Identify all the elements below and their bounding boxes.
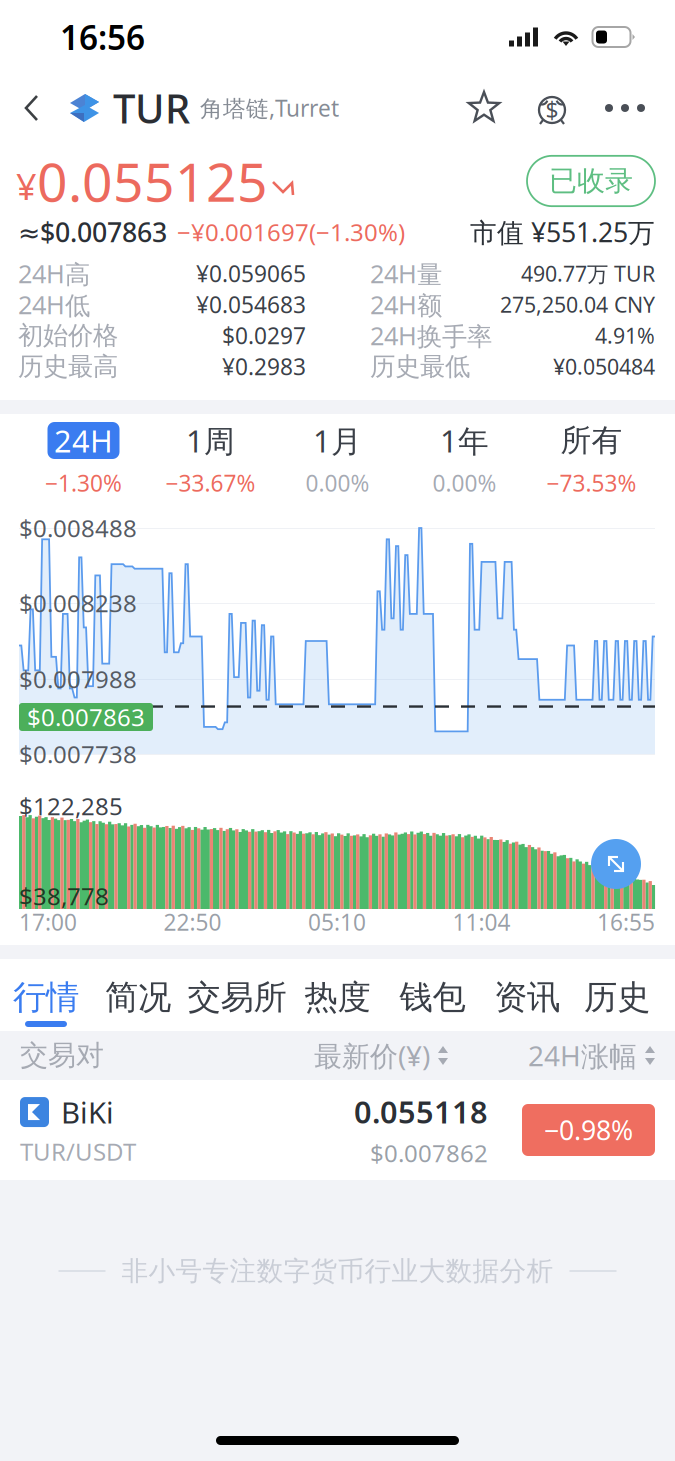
button[interactable]: 1年: [401, 414, 528, 505]
staticText: 0.055118: [354, 1091, 488, 1132]
staticText: 17:00: [19, 907, 77, 937]
staticText: 行情: [13, 977, 79, 1018]
staticText: 24H量: [370, 257, 442, 290]
staticText: 历史最高: [18, 351, 118, 382]
staticText: $0.008238: [19, 587, 137, 619]
staticText: ¥0.2983: [222, 351, 306, 381]
staticText: 交易对: [20, 1038, 104, 1073]
staticText: $0.0297: [222, 320, 306, 350]
staticText: 市值 ¥551.25万: [470, 214, 655, 250]
staticText: 05:10: [308, 907, 366, 937]
staticText: 24H低: [18, 288, 90, 321]
button[interactable]: 所有: [528, 414, 655, 505]
staticText: 历史最低: [370, 351, 470, 382]
staticText: ¥0.054683: [196, 289, 306, 319]
staticText: $0.007863: [27, 701, 145, 733]
staticText: 490.77万 TUR: [521, 259, 655, 288]
staticText: −1.30%: [45, 468, 122, 498]
staticText: 所有: [560, 422, 622, 459]
staticText: 24H换手率: [370, 319, 492, 352]
staticText: $0.007988: [19, 663, 137, 695]
staticText: 4.91%: [595, 321, 655, 350]
button[interactable]: Price alert: [527, 73, 577, 143]
staticText: 24H涨幅: [528, 1037, 637, 1074]
button[interactable]: 已收录: [527, 156, 655, 206]
staticText: −33.67%: [165, 468, 255, 498]
staticText: 已收录: [549, 164, 633, 198]
staticText: 275,250.04 CNY: [500, 290, 655, 319]
button[interactable]: 行情: [0, 959, 92, 1031]
button[interactable]: 1月: [274, 414, 401, 505]
button[interactable]: Expand chart: [591, 839, 641, 889]
staticText: $: [545, 95, 558, 125]
staticText: 16:56: [60, 15, 145, 59]
staticText: TUR: [113, 81, 190, 134]
staticText: 0.055125: [37, 146, 268, 216]
staticText: 交易所: [187, 977, 286, 1018]
staticText: 资讯: [494, 977, 560, 1018]
staticText: −0.98%: [544, 1112, 633, 1148]
button[interactable]: 钱包: [385, 959, 480, 1031]
staticText: 24H额: [370, 288, 442, 321]
staticText: 24H高: [18, 257, 90, 290]
staticText: TUR/USDT: [20, 1135, 136, 1167]
staticText: 1月: [313, 420, 362, 461]
staticText: 最新价(¥): [314, 1037, 430, 1074]
button[interactable]: 1周: [147, 414, 274, 505]
staticText: 钱包: [399, 977, 465, 1018]
staticText: $122,285: [19, 790, 123, 822]
staticText: 历史: [584, 977, 650, 1018]
button[interactable]: More options: [595, 73, 655, 143]
staticText: −¥0.001697(−1.30%): [177, 216, 405, 248]
staticText: 初始价格: [18, 320, 118, 351]
button[interactable]: 交易所: [184, 959, 290, 1031]
button[interactable]: 24H: [20, 414, 147, 505]
staticText: 1年: [440, 420, 489, 461]
staticText: BiKi: [61, 1093, 114, 1132]
staticText: ¥0.050484: [553, 352, 655, 381]
button[interactable]: BiKi: [0, 1080, 675, 1180]
staticText: 11:04: [452, 907, 510, 937]
staticText: 24H: [54, 420, 113, 461]
staticText: $38,778: [19, 880, 109, 912]
staticText: ¥0.059065: [196, 258, 306, 288]
staticText: 1周: [186, 420, 235, 461]
staticText: 简况: [105, 977, 171, 1018]
staticText: $0.007862: [370, 1137, 488, 1169]
button[interactable]: 简况: [92, 959, 184, 1031]
button[interactable]: 历史: [574, 959, 660, 1031]
staticText: 角塔链,Turret: [200, 93, 339, 123]
staticText: 非小号专注数字货币行业大数据分析: [121, 1255, 553, 1287]
staticText: $0.007738: [19, 738, 137, 770]
staticText: 0.00%: [432, 468, 496, 498]
staticText: 22:50: [163, 907, 221, 937]
staticText: $0.008488: [19, 512, 137, 544]
staticText: ≈$0.007863: [18, 214, 167, 250]
staticText: −73.53%: [546, 468, 636, 498]
staticText: 16:55: [597, 907, 655, 937]
button[interactable]: Add to favorites: [459, 73, 509, 143]
staticText: 热度: [304, 977, 370, 1018]
button[interactable]: 热度: [290, 959, 385, 1031]
staticText: ¥: [16, 162, 37, 210]
staticText: 0.00%: [305, 468, 369, 498]
button[interactable]: Back: [6, 73, 58, 143]
button[interactable]: 资讯: [480, 959, 574, 1031]
